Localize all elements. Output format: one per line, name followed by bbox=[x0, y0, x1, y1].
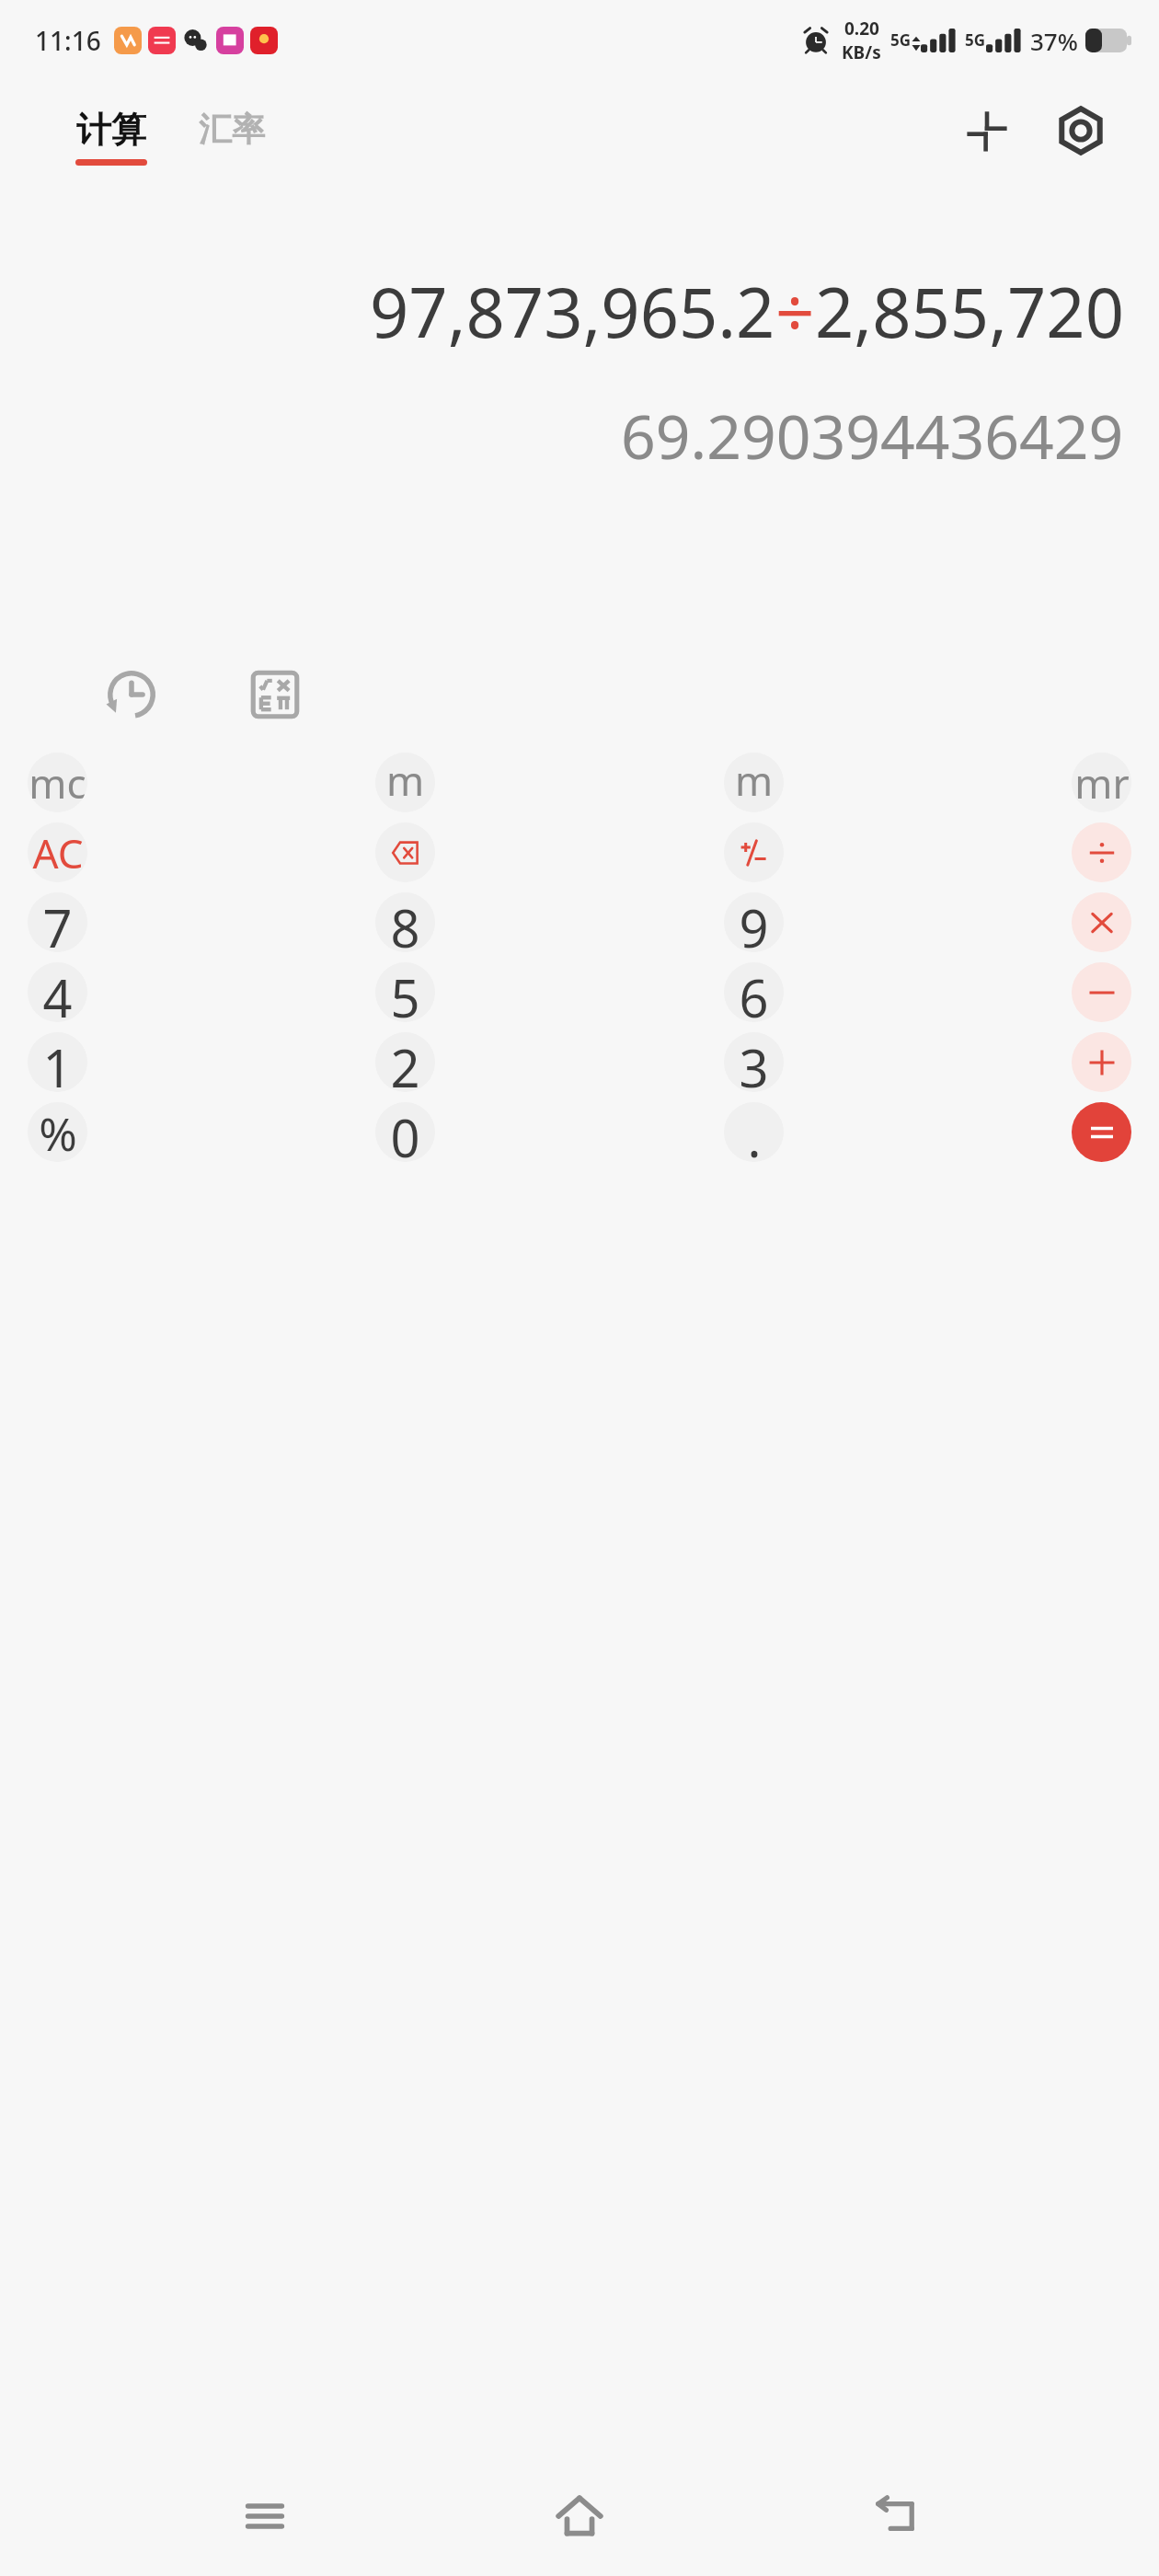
button[interactable]: Recent apps bbox=[214, 2466, 316, 2567]
staticText: 4 bbox=[42, 962, 73, 1022]
staticText: 0.20 bbox=[844, 17, 879, 40]
button[interactable]: History bbox=[92, 655, 171, 734]
button[interactable]: Plus bbox=[1072, 1032, 1131, 1092]
staticText: 9 bbox=[739, 892, 769, 952]
button[interactable]: Minus bbox=[1072, 962, 1131, 1022]
button[interactable]: 8 bbox=[375, 892, 435, 952]
button[interactable]: Back bbox=[844, 2466, 946, 2567]
staticText: 汇率 bbox=[199, 109, 265, 150]
button[interactable]: 4 bbox=[28, 962, 87, 1022]
staticText: 11:16 bbox=[35, 23, 101, 58]
staticText: m+ bbox=[375, 753, 435, 812]
button[interactable]: m− bbox=[724, 753, 784, 812]
button[interactable]: Equals bbox=[1072, 1102, 1131, 1162]
staticText: 69.290394436429 bbox=[621, 394, 1124, 477]
staticText: AC bbox=[32, 825, 84, 880]
button[interactable]: . bbox=[724, 1102, 784, 1162]
staticText: 97,873,965.2 bbox=[370, 265, 775, 358]
button[interactable]: Home bbox=[529, 2466, 630, 2567]
staticText: 7 bbox=[42, 892, 73, 952]
button[interactable]: 9 bbox=[724, 892, 784, 952]
button[interactable]: mc bbox=[28, 753, 87, 812]
staticText: 5G bbox=[890, 29, 912, 51]
button[interactable]: AC bbox=[28, 822, 87, 882]
staticText: 2,855,720 bbox=[815, 265, 1124, 358]
staticText: 5G bbox=[965, 29, 986, 51]
staticText: 6 bbox=[739, 962, 769, 1022]
button[interactable]: 7 bbox=[28, 892, 87, 952]
staticText: % bbox=[39, 1102, 77, 1162]
button[interactable]: 3 bbox=[724, 1032, 784, 1092]
staticText: mc bbox=[29, 755, 86, 811]
button[interactable]: 1 bbox=[28, 1032, 87, 1092]
button[interactable]: Scientific functions bbox=[235, 655, 315, 734]
staticText: 0 bbox=[390, 1102, 420, 1162]
button[interactable]: 6 bbox=[724, 962, 784, 1022]
staticText: . bbox=[747, 1102, 762, 1162]
button[interactable]: Backspace bbox=[375, 822, 435, 882]
button[interactable]: % bbox=[28, 1102, 87, 1162]
button[interactable]: 0 bbox=[375, 1102, 435, 1162]
button[interactable]: Divide bbox=[1072, 822, 1131, 882]
staticText: 计算 bbox=[76, 108, 146, 152]
staticText: 37% bbox=[1030, 25, 1078, 57]
button[interactable]: 2 bbox=[375, 1032, 435, 1092]
button[interactable]: Plus minus bbox=[724, 822, 784, 882]
button[interactable]: 5 bbox=[375, 962, 435, 1022]
staticText: 2 bbox=[390, 1032, 420, 1092]
button[interactable]: Multiply bbox=[1072, 892, 1131, 952]
button[interactable]: Settings bbox=[1045, 95, 1117, 167]
staticText: mr bbox=[1074, 755, 1130, 811]
staticText: m− bbox=[724, 753, 784, 812]
staticText: 5 bbox=[390, 962, 420, 1022]
button[interactable]: 计算 bbox=[75, 108, 147, 166]
button[interactable]: mr bbox=[1072, 753, 1131, 812]
staticText: 3 bbox=[739, 1032, 769, 1092]
button[interactable]: Collapse bbox=[951, 95, 1023, 167]
staticText: KB/s bbox=[842, 40, 881, 64]
staticText: ÷ bbox=[775, 265, 815, 358]
staticText: 8 bbox=[390, 892, 420, 952]
staticText: 1 bbox=[42, 1032, 73, 1092]
button[interactable]: m+ bbox=[375, 753, 435, 812]
button[interactable]: 汇率 bbox=[199, 109, 265, 150]
